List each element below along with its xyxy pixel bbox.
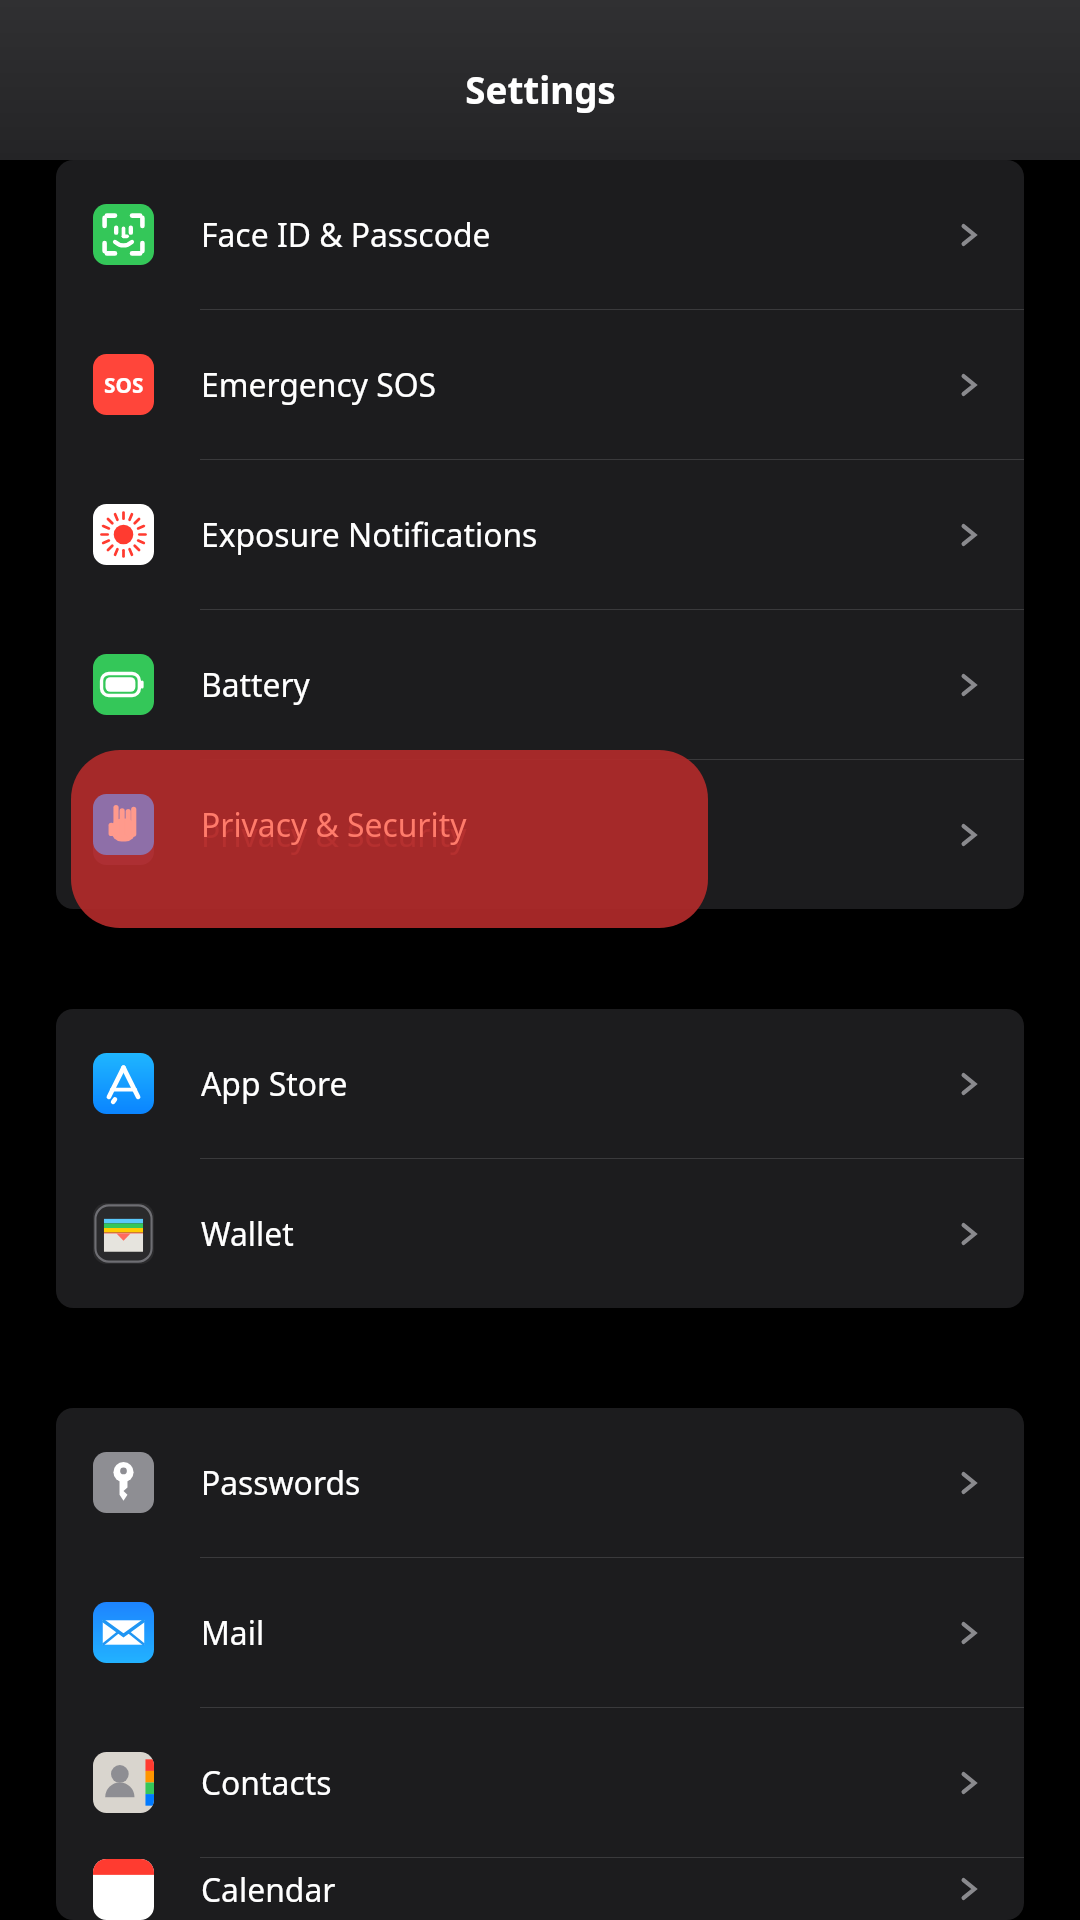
button[interactable]: Face ID & Passcode	[56, 160, 1024, 310]
staticText: Privacy & Security	[201, 803, 467, 846]
button[interactable]: Wallet	[56, 1159, 1024, 1308]
staticText: Contacts	[201, 1761, 953, 1804]
staticText: Face ID & Passcode	[201, 213, 953, 256]
staticText: Passwords	[201, 1461, 953, 1504]
staticText: Emergency SOS	[201, 363, 953, 406]
staticText: Settings	[465, 65, 616, 115]
staticText: App Store	[201, 1062, 953, 1105]
button[interactable]: Passwords	[56, 1408, 1024, 1558]
staticText: Mail	[201, 1611, 953, 1654]
staticText: Calendar	[201, 1868, 953, 1911]
staticText: Wallet	[201, 1212, 953, 1255]
button[interactable]: App Store	[56, 1009, 1024, 1159]
staticText: Privacy & Security	[201, 813, 953, 856]
button[interactable]: Exposure Notifications	[56, 460, 1024, 610]
staticText: Battery	[201, 663, 953, 706]
button[interactable]: Mail	[56, 1558, 1024, 1708]
button[interactable]: Contacts	[56, 1708, 1024, 1858]
staticText: Exposure Notifications	[201, 513, 953, 556]
button[interactable]: SOS	[56, 310, 1024, 460]
staticText: SOS	[104, 371, 144, 399]
button[interactable]: Calendar	[56, 1858, 1024, 1920]
button[interactable]: Battery	[56, 610, 1024, 760]
button[interactable]: Privacy & Security	[56, 760, 1024, 909]
button[interactable]: Privacy & Security	[71, 750, 708, 928]
